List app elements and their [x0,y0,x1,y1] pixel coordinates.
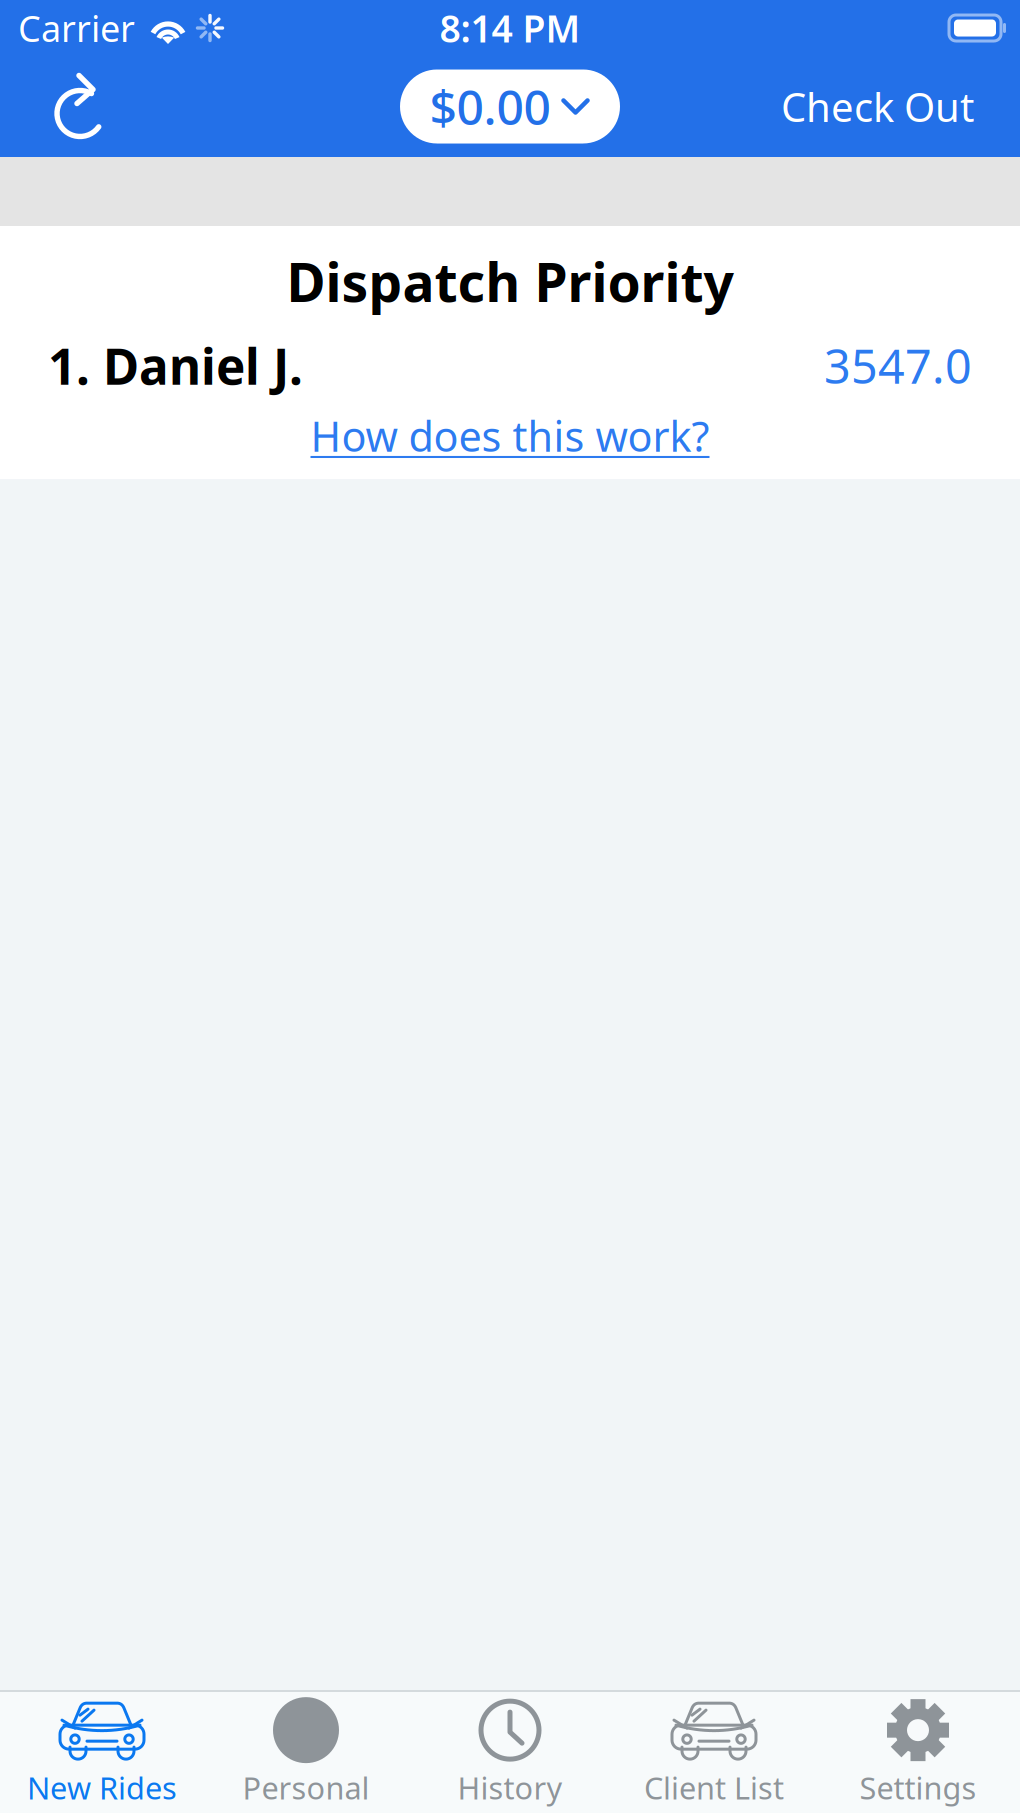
button[interactable]: New Rides [0,1687,204,1813]
button[interactable]: How does this work? [310,402,709,469]
button[interactable]: Settings [816,1687,1020,1813]
staticText: 8:14 PM [439,3,580,53]
staticText: Carrier [18,4,135,52]
staticText: $0.00 [429,75,550,138]
staticText: Personal [242,1767,369,1808]
staticText: Settings [859,1767,976,1808]
staticText: Check Out [781,80,974,133]
button[interactable]: Check Out [781,72,974,141]
button[interactable]: $0.00 [400,69,620,143]
button[interactable]: Refresh [46,68,116,144]
staticText: New Rides [27,1767,177,1808]
staticText: 1. Daniel J. [48,333,303,398]
button[interactable]: Client List [612,1687,816,1813]
staticText: Dispatch Priority [286,246,733,317]
button[interactable]: Personal [204,1687,408,1813]
staticText: History [457,1767,562,1808]
staticText: 3547.0 [824,335,972,397]
staticText: Client List [644,1767,784,1808]
button[interactable]: History [408,1687,612,1813]
staticText: How does this work? [310,408,709,463]
